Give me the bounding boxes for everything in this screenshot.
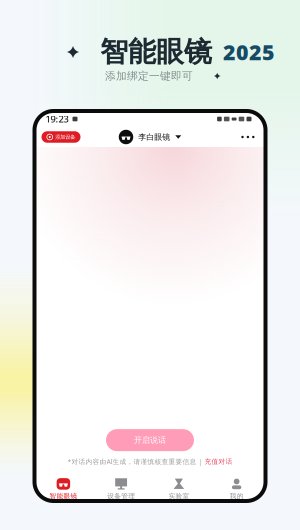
staticText: 智能眼镜 — [100, 35, 212, 69]
button[interactable]: 实验室 — [150, 477, 208, 500]
staticText: 设备管理 — [107, 492, 135, 500]
button[interactable]: 开启说话 — [106, 429, 194, 451]
button[interactable]: 添加设备 — [41, 131, 80, 143]
staticText: 添加设备 — [55, 134, 75, 140]
staticText: 实验室 — [168, 492, 189, 500]
staticText: 2025 — [223, 38, 275, 66]
staticText: 开启说话 — [134, 435, 166, 445]
button[interactable]: 设备管理 — [92, 477, 150, 500]
staticText: 智能眼镜 — [49, 492, 77, 500]
button[interactable]: 更多 — [237, 132, 258, 142]
staticText: 李白眼镜 — [138, 132, 170, 142]
staticText: 添加绑定一键即可 — [105, 69, 193, 82]
button[interactable]: 我的 — [208, 477, 266, 500]
staticText: 充值对话 — [204, 457, 232, 466]
button[interactable]: 智能眼镜 — [34, 477, 92, 500]
staticText: 19:23 — [45, 113, 68, 125]
staticText: 我的 — [230, 492, 244, 500]
staticText: *对话内容由AI生成，请谨慎核查重要信息 | — [67, 457, 204, 466]
button[interactable]: 李白眼镜 — [119, 130, 181, 144]
